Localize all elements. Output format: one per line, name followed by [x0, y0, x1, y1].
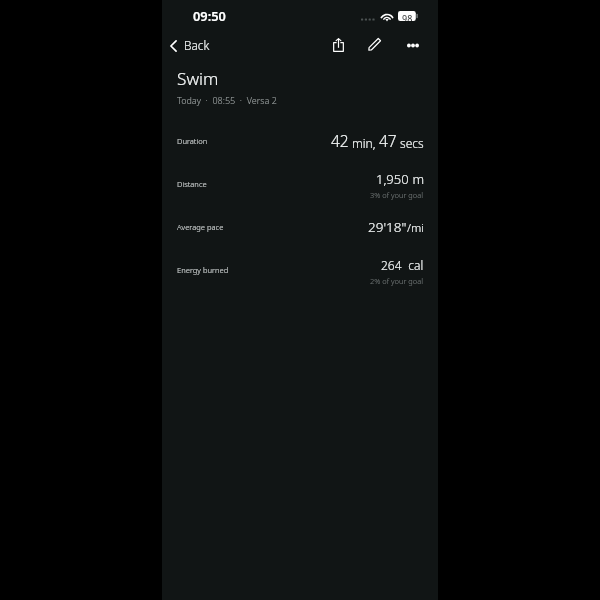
- button[interactable]: Average pace: [162, 205, 438, 248]
- staticText: Average pace: [177, 222, 224, 232]
- staticText: 09:50: [193, 7, 226, 24]
- staticText: /mi: [407, 220, 424, 236]
- staticText: 47: [379, 130, 397, 151]
- staticText: 29'18": [368, 218, 407, 236]
- staticText: 98: [402, 12, 413, 24]
- button[interactable]: More options: [402, 34, 424, 56]
- staticText: Today · 08:55 · Versa 2: [177, 94, 277, 106]
- button[interactable]: Distance: [162, 162, 438, 205]
- staticText: cal: [402, 257, 424, 273]
- staticText: secs: [397, 135, 424, 151]
- staticText: m: [409, 170, 424, 188]
- staticText: Duration: [177, 136, 208, 146]
- button[interactable]: Edit: [363, 34, 385, 56]
- staticText: min,: [349, 135, 379, 151]
- staticText: Distance: [177, 179, 207, 189]
- staticText: Swim: [177, 67, 219, 90]
- staticText: 264: [381, 257, 402, 273]
- staticText: Back: [184, 37, 210, 53]
- staticText: 3% of your goal: [370, 190, 424, 200]
- button[interactable]: Back: [162, 34, 220, 56]
- staticText: 1,950: [376, 170, 409, 188]
- button[interactable]: Share: [327, 34, 349, 56]
- staticText: 2% of your goal: [370, 276, 424, 286]
- button[interactable]: Energy burned: [162, 248, 438, 291]
- staticText: 42: [331, 130, 349, 151]
- staticText: Energy burned: [177, 265, 229, 275]
- button[interactable]: Duration: [162, 119, 438, 162]
